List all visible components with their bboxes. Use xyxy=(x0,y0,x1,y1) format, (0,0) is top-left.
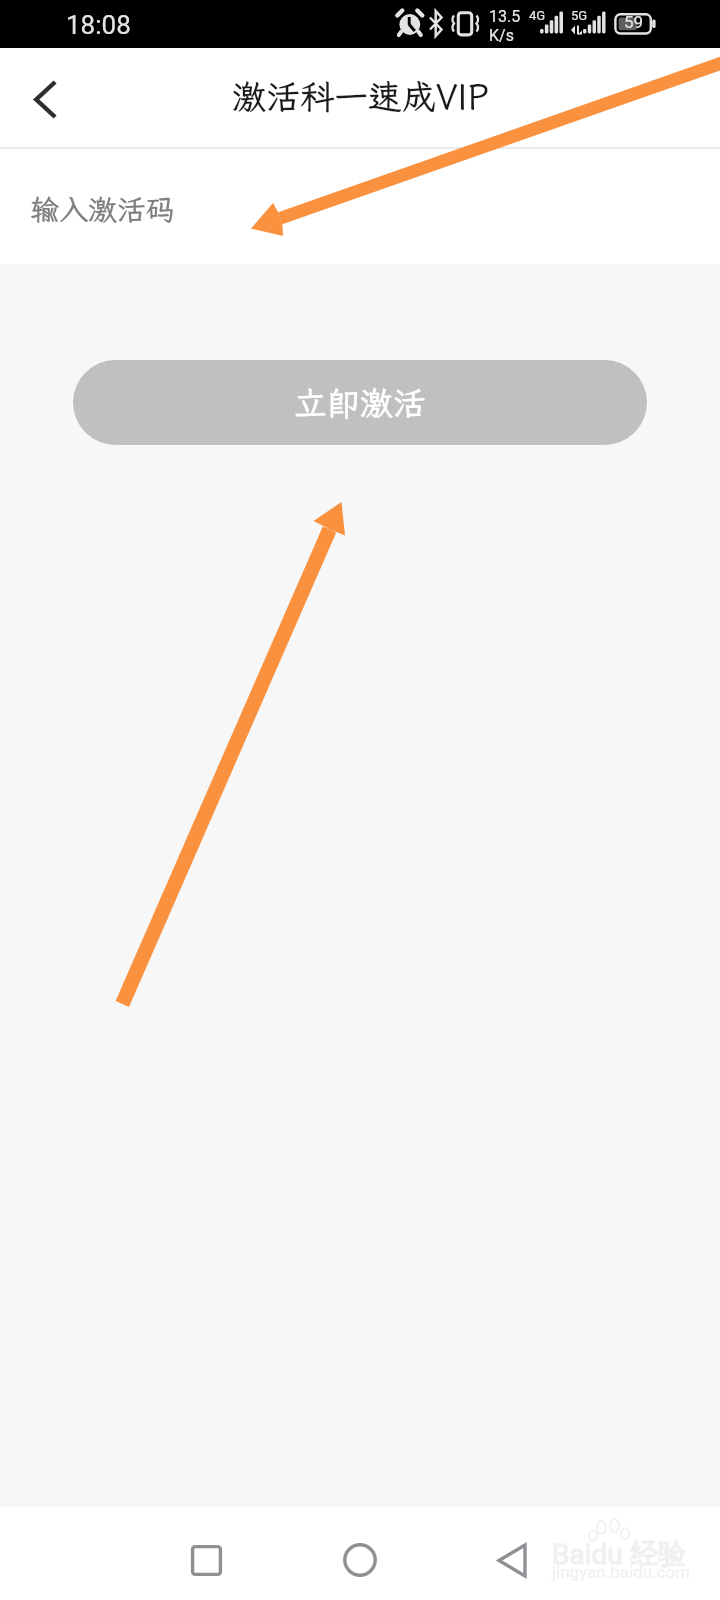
staticText: 5G xyxy=(571,8,588,23)
staticText: 立即激活 xyxy=(294,381,426,424)
button[interactable]: 立即激活 xyxy=(73,360,647,445)
staticText: Baidu 经验 xyxy=(552,1537,686,1572)
staticText: 13.5 xyxy=(489,7,521,26)
button[interactable]: Back xyxy=(0,48,90,149)
button[interactable]: 输入激活码 xyxy=(0,149,720,264)
staticText: 18:08 xyxy=(66,10,131,40)
staticText: 激活科一速成VIP xyxy=(232,74,489,119)
staticText: 59 xyxy=(624,12,644,32)
button[interactable]: Recents xyxy=(174,1528,238,1592)
staticText: jingyan.baidu.com xyxy=(552,1562,691,1582)
staticText: 输入激活码 xyxy=(30,190,176,228)
staticText: K/s xyxy=(489,26,514,45)
button[interactable]: Back xyxy=(480,1528,544,1592)
button[interactable]: Home xyxy=(328,1528,392,1592)
staticText: 4G xyxy=(529,8,546,23)
